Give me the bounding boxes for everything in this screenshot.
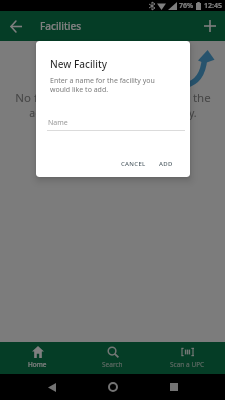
staticText: CANCEL (121, 160, 146, 168)
button[interactable] (164, 377, 184, 397)
staticText: Home (28, 360, 47, 369)
staticText: 76% (179, 1, 194, 11)
staticText: Scan a UPC (170, 360, 205, 369)
staticText: Facilities (40, 19, 82, 33)
staticText: Name (48, 118, 68, 128)
staticText: No facilities exist. Please click on the (15, 90, 211, 106)
staticText: 12:45 (204, 1, 222, 11)
staticText: New Facility (50, 57, 108, 71)
staticText: add button above to add a facility. (29, 106, 197, 120)
button[interactable]: Search (75, 342, 150, 374)
button[interactable] (42, 377, 62, 397)
button[interactable]: ADD (156, 157, 176, 171)
button[interactable] (8, 18, 24, 34)
button[interactable]: Home (0, 342, 75, 374)
button[interactable] (103, 377, 123, 397)
staticText: Enter a name for the facility you would … (50, 76, 155, 94)
button[interactable]: Scan a UPC (150, 342, 225, 374)
button[interactable] (202, 18, 218, 34)
staticText: Search (102, 360, 123, 369)
staticText: ADD (159, 160, 173, 168)
button[interactable]: CANCEL (118, 157, 149, 171)
button[interactable]: Name (47, 111, 185, 131)
